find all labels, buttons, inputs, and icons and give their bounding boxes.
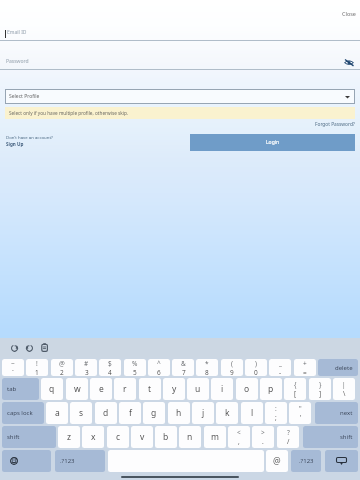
button[interactable]: l [241,402,263,424]
button[interactable]: ( [221,359,243,376]
button[interactable]: delete [318,359,358,376]
button[interactable]: r [114,378,136,400]
staticText: delete [335,364,353,372]
button[interactable]: w [66,378,88,400]
button[interactable]: Paste [40,343,49,352]
staticText: , [238,437,240,446]
button[interactable]: q [41,378,63,400]
button[interactable]: @ [266,450,288,472]
staticText: Email ID [7,29,27,36]
button[interactable]: shift [2,426,56,448]
button[interactable]: a [46,402,68,424]
button[interactable]: ^ [148,359,170,376]
button[interactable]: $ [99,359,121,376]
button[interactable]: x [82,426,104,448]
button[interactable]: Don't have an account? [6,134,53,147]
staticText: 3 [85,368,89,376]
button[interactable]: j [192,402,214,424]
button[interactable]: t [139,378,161,400]
staticText: " [299,404,302,413]
button[interactable]: g [143,402,165,424]
staticText: u [195,383,201,395]
button[interactable]: z [58,426,80,448]
staticText: + [303,359,307,368]
button[interactable]: .?123 [291,450,321,472]
button[interactable]: u [187,378,209,400]
staticText: Don't have an account? [6,134,53,140]
staticText: . [262,437,264,446]
staticText: y [172,383,177,395]
button[interactable]: > [252,426,274,448]
button[interactable]: e [90,378,112,400]
button[interactable]: o [236,378,258,400]
button[interactable]: k [216,402,238,424]
button[interactable]: ) [245,359,267,376]
staticText: w [74,383,81,395]
button[interactable]: c [107,426,129,448]
button[interactable]: ? [277,426,299,448]
staticText: 1 [35,368,39,376]
button[interactable]: < [228,426,250,448]
button[interactable]: m [204,426,226,448]
button[interactable]: Select Profile [5,89,355,104]
staticText: c [116,431,121,443]
button[interactable]: .?123 [55,450,105,472]
button[interactable]: # [75,359,97,376]
button[interactable]: tab [2,378,39,400]
button[interactable]: ~ [2,359,24,376]
staticText: j [202,407,205,419]
staticText: b [163,431,169,443]
staticText: : [275,404,277,413]
staticText: = [303,368,307,376]
button[interactable]: Show password [343,57,355,67]
button[interactable]: Undo [10,343,19,352]
button[interactable]: + [294,359,316,376]
button[interactable]: { [284,378,306,400]
staticText: tab [7,385,17,393]
staticText: Select only if you have multiple profile… [9,110,129,116]
button[interactable]: shift [303,426,358,448]
button[interactable]: Hide keyboard [325,450,358,472]
button[interactable]: * [196,359,218,376]
button[interactable]: f [119,402,141,424]
staticText: - [279,368,282,376]
button[interactable]: y [163,378,185,400]
staticText: r [123,383,127,395]
staticText: d [103,407,109,419]
button[interactable]: " [289,402,311,424]
button[interactable]: _ [269,359,291,376]
button[interactable]: n [179,426,201,448]
staticText: @ [59,359,65,368]
staticText: 0 [254,368,258,376]
button[interactable]: Login [190,134,355,151]
staticText: \ [343,389,346,398]
button[interactable]: @ [51,359,73,376]
staticText: 6 [157,368,161,376]
button[interactable]: p [260,378,282,400]
staticText: ? [287,428,290,437]
button[interactable]: & [172,359,194,376]
button[interactable]: % [124,359,146,376]
button[interactable]: } [309,378,331,400]
button[interactable]: Redo [25,343,34,352]
button[interactable]: Forgot Password? [313,120,357,129]
button[interactable]: v [131,426,153,448]
staticText: / [287,437,290,446]
button[interactable]: next [315,402,358,424]
staticText: } [319,380,322,389]
button[interactable]: b [155,426,177,448]
button[interactable]: d [95,402,117,424]
staticText: l [251,407,254,419]
button[interactable]: i [211,378,233,400]
staticText: q [49,383,55,395]
button[interactable]: | [333,378,355,400]
button[interactable]: h [168,402,190,424]
button[interactable]: : [265,402,287,424]
button[interactable]: caps lock [2,402,44,424]
button[interactable]: ! [26,359,48,376]
staticText: k [225,407,230,419]
button[interactable]: Emoji [2,450,51,472]
button[interactable]: s [70,402,92,424]
button[interactable]: Close [340,8,358,19]
